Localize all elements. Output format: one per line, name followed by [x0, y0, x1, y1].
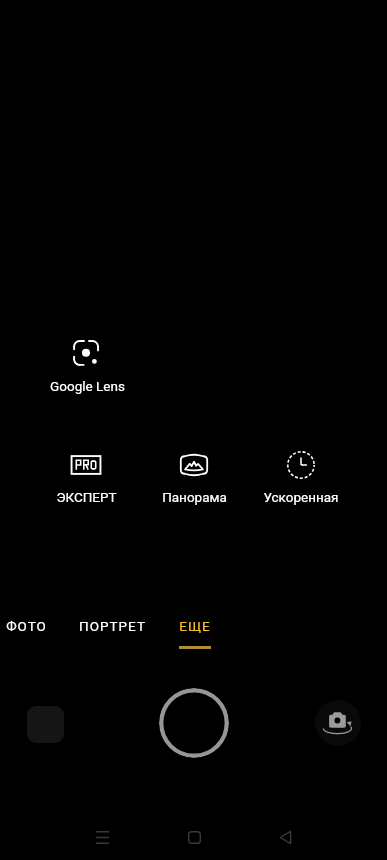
- staticText: Google Lens: [50, 378, 125, 394]
- button[interactable]: Панорама: [142, 453, 246, 505]
- button[interactable]: Google Lens: [47, 340, 127, 394]
- staticText: ЭКСПЕРТ: [56, 489, 117, 505]
- staticText: ЕЩЕ: [179, 618, 211, 634]
- button[interactable]: Gallery: [27, 706, 64, 743]
- button[interactable]: Take photo: [159, 688, 229, 758]
- button[interactable]: Switch camera: [315, 700, 361, 746]
- button[interactable]: ФОТО: [0, 618, 63, 634]
- staticText: ПОРТРЕТ: [79, 618, 146, 634]
- button[interactable]: ЕЩЕ: [158, 618, 232, 649]
- button[interactable]: Home: [180, 822, 208, 852]
- button[interactable]: Recents: [88, 822, 116, 852]
- button[interactable]: ПОРТРЕТ: [75, 618, 149, 634]
- button[interactable]: Back: [271, 822, 299, 852]
- staticText: ФОТО: [6, 618, 47, 634]
- staticText: Панорама: [162, 489, 227, 505]
- button[interactable]: Ускоренная: [249, 453, 353, 505]
- button[interactable]: ЭКСПЕРТ: [34, 453, 138, 505]
- staticText: Ускоренная: [263, 489, 339, 505]
